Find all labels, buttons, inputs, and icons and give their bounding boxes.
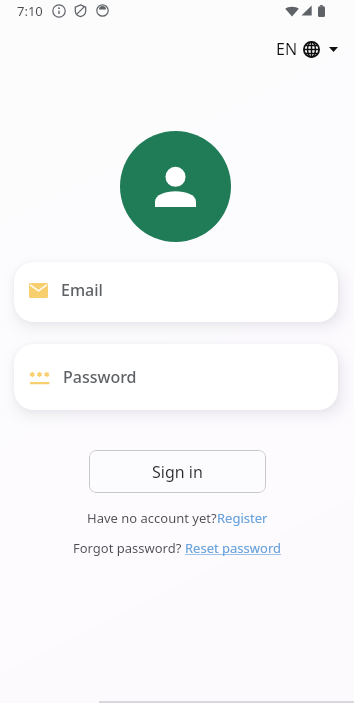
staticText: EN	[276, 38, 298, 60]
staticText: Forgot password?	[73, 539, 185, 557]
button[interactable]: Change language	[262, 31, 354, 67]
staticText: Register	[217, 509, 268, 527]
button[interactable]: Email	[14, 262, 338, 322]
button[interactable]: Password	[14, 344, 338, 410]
button[interactable]: Sign in	[89, 450, 266, 493]
button[interactable]: Profile avatar	[120, 131, 231, 242]
staticText: Have no account yet?	[87, 509, 217, 527]
staticText: Sign in	[152, 461, 203, 483]
staticText: Reset password	[185, 539, 281, 557]
staticText: 7:10	[17, 2, 43, 20]
button[interactable]: Reset password	[185, 539, 281, 557]
staticText: Email	[61, 279, 103, 301]
button[interactable]: Register	[217, 509, 268, 527]
staticText: Password	[63, 366, 137, 388]
